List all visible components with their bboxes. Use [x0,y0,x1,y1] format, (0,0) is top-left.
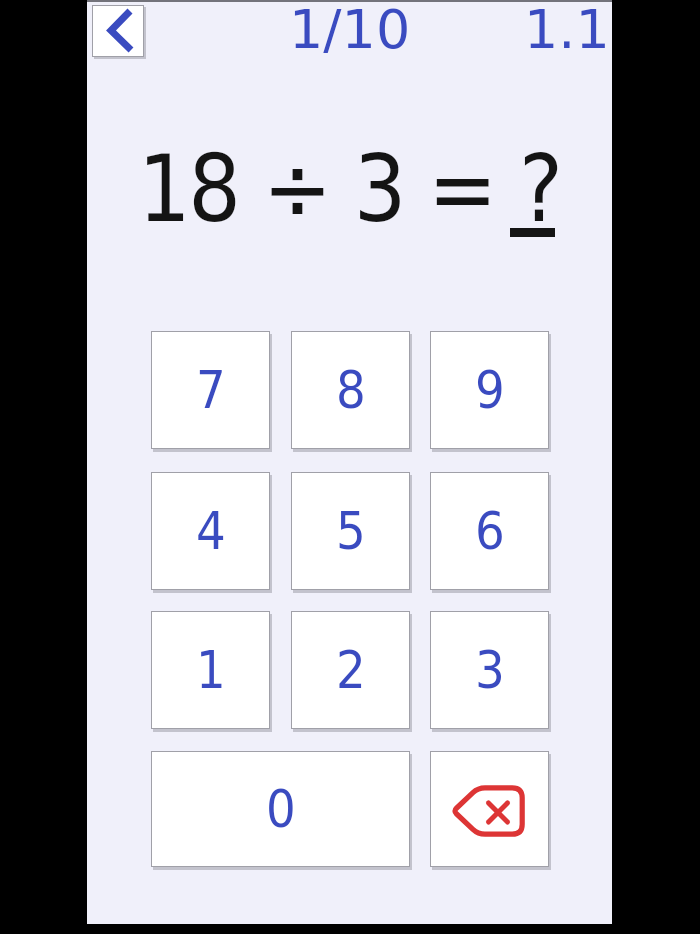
staticText: 8 [336,360,366,421]
staticText: 2 [336,640,366,701]
staticText: 1 [196,640,226,701]
button[interactable]: 7 [151,331,270,449]
button[interactable]: 8 [291,331,410,449]
staticText: 1.1 [524,0,610,61]
staticText: 1/10 [289,0,411,61]
staticText: 0 [266,779,296,840]
button[interactable]: 3 [430,611,549,729]
staticText: 4 [196,501,226,562]
staticText: 6 [475,501,505,562]
button[interactable]: 6 [430,472,549,590]
staticText: 5 [336,501,366,562]
button[interactable] [92,5,144,57]
staticText: 9 [475,360,505,421]
button[interactable]: 2 [291,611,410,729]
staticText: 3 [475,640,505,701]
button[interactable]: 4 [151,472,270,590]
staticText: 18 ÷ 3 = ? [138,136,561,243]
button[interactable]: 0 [151,751,410,867]
button[interactable]: 1 [151,611,270,729]
button[interactable] [430,751,549,867]
staticText: 7 [196,360,226,421]
button[interactable]: 5 [291,472,410,590]
button[interactable]: 9 [430,331,549,449]
